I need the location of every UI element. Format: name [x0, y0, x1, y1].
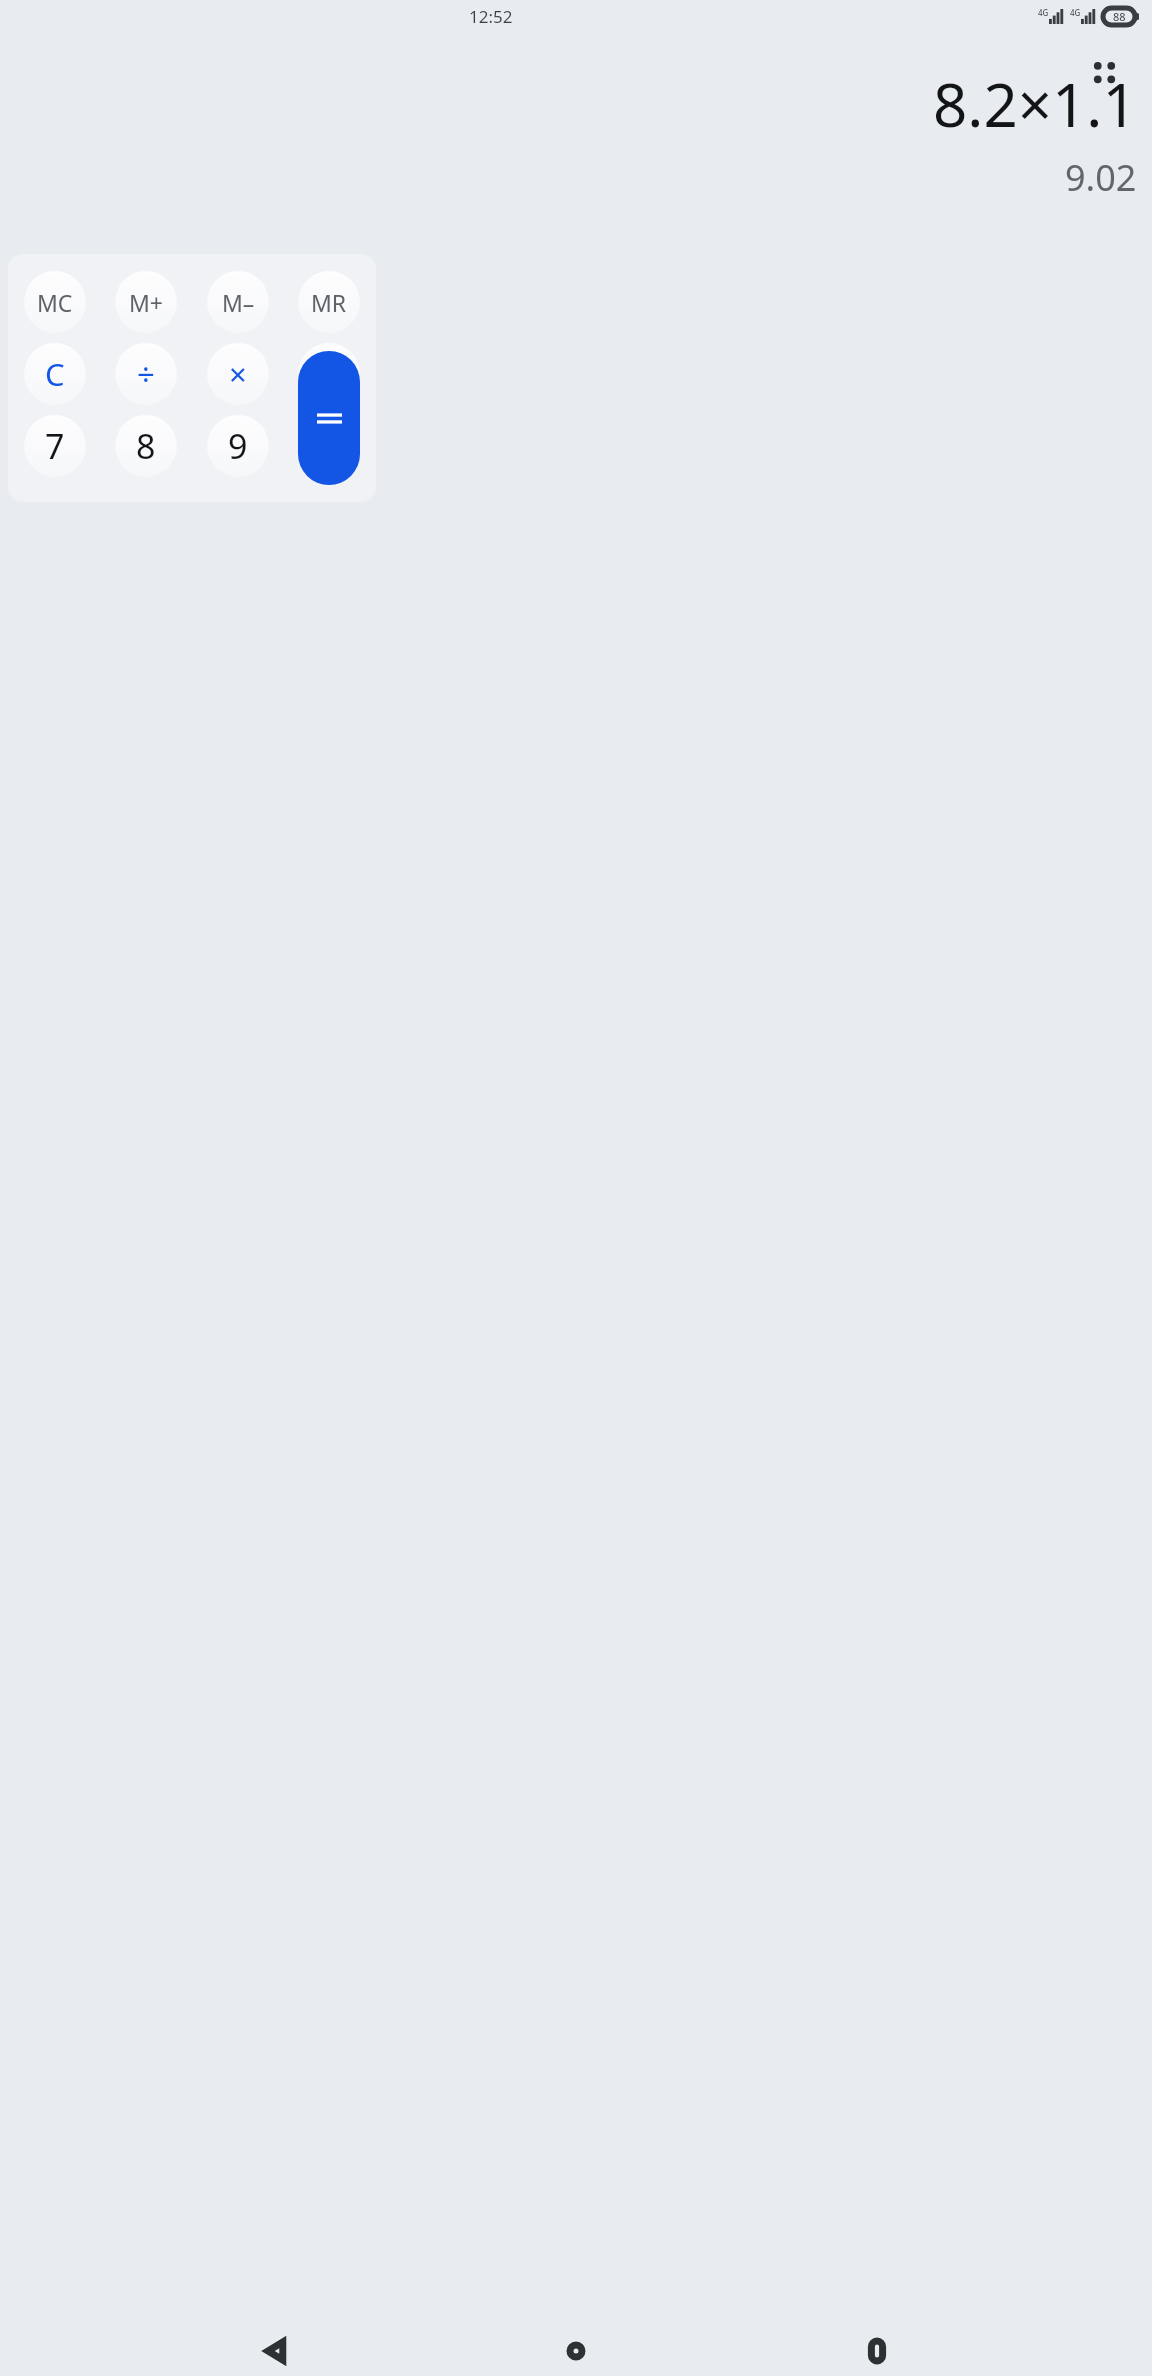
staticText: 8.2×1.1 [933, 63, 1137, 145]
staticText: 8 [136, 423, 156, 469]
button[interactable]: Back [251, 2326, 301, 2376]
button[interactable]: Minus [298, 415, 360, 477]
staticText: C [45, 353, 65, 395]
button[interactable]: Backspace [298, 343, 360, 405]
staticText: 9.02 [1065, 153, 1137, 202]
button[interactable]: M+ [115, 271, 177, 333]
button[interactable]: MC [24, 271, 86, 333]
staticText: × [229, 353, 247, 395]
button[interactable]: Recents [852, 2326, 902, 2376]
button[interactable]: More options [1081, 49, 1128, 96]
button[interactable]: Home [551, 2326, 601, 2376]
button[interactable]: M– [207, 271, 269, 333]
staticText: 7 [45, 423, 65, 469]
button[interactable]: 9 [207, 415, 269, 477]
staticText: MC [37, 287, 73, 318]
staticText: 4G [1038, 7, 1049, 18]
staticText: M– [222, 287, 255, 318]
button[interactable]: × [207, 343, 269, 405]
button[interactable]: 8 [115, 415, 177, 477]
staticText: 12:52 [469, 5, 513, 28]
staticText: 9 [228, 423, 248, 469]
staticText: M+ [129, 287, 164, 318]
staticText: 88 [1113, 9, 1126, 24]
button[interactable]: MR [298, 271, 360, 333]
button[interactable]: ÷ [115, 343, 177, 405]
staticText: ÷ [137, 353, 155, 395]
staticText: 4G [1070, 7, 1081, 18]
button[interactable]: C [24, 343, 86, 405]
staticText: MR [311, 287, 347, 318]
button[interactable]: Equals [298, 351, 360, 485]
button[interactable]: 7 [24, 415, 86, 477]
